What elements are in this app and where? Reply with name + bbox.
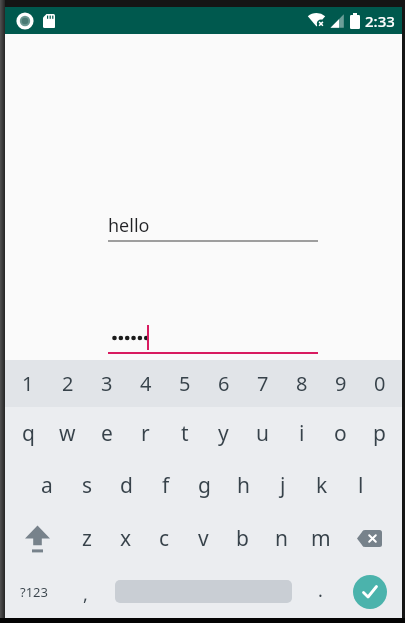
- staticText: 7: [257, 370, 269, 397]
- button[interactable]: g: [185, 459, 224, 512]
- staticText: l: [358, 471, 364, 500]
- button[interactable]: 5: [165, 360, 204, 407]
- button[interactable]: n: [262, 512, 301, 565]
- staticText: p: [373, 419, 386, 448]
- button[interactable]: 2: [48, 360, 87, 407]
- button[interactable]: [8, 512, 67, 565]
- staticText: n: [275, 524, 288, 553]
- staticText: 0: [374, 370, 386, 397]
- staticText: z: [82, 524, 92, 553]
- button[interactable]: s: [67, 459, 107, 512]
- button[interactable]: r: [126, 407, 165, 459]
- button[interactable]: 4: [126, 360, 165, 407]
- button[interactable]: w: [48, 407, 87, 459]
- staticText: q: [22, 419, 35, 448]
- button[interactable]: t: [165, 407, 204, 459]
- staticText: 6: [218, 370, 230, 397]
- button[interactable]: ,: [66, 565, 105, 618]
- button[interactable]: [340, 565, 399, 618]
- button[interactable]: v: [184, 512, 223, 565]
- button[interactable]: m: [301, 512, 340, 565]
- staticText: e: [101, 419, 113, 448]
- staticText: i: [299, 419, 305, 448]
- button[interactable]: p: [360, 407, 399, 459]
- staticText: ,: [83, 582, 88, 607]
- button[interactable]: c: [145, 512, 184, 565]
- staticText: hello: [108, 213, 150, 238]
- staticText: u: [256, 419, 269, 448]
- button[interactable]: o: [321, 407, 360, 459]
- button[interactable]: 1: [8, 360, 48, 407]
- staticText: 2: [62, 370, 74, 397]
- staticText: 3: [101, 370, 113, 397]
- staticText: 8: [296, 370, 308, 397]
- button[interactable]: l: [341, 459, 380, 512]
- staticText: h: [237, 471, 250, 500]
- staticText: v: [198, 524, 209, 553]
- staticText: m: [311, 524, 331, 553]
- staticText: 2:33: [365, 11, 395, 31]
- button[interactable]: j: [263, 459, 302, 512]
- staticText: t: [181, 419, 189, 448]
- staticText: d: [120, 471, 133, 500]
- staticText: j: [280, 471, 286, 500]
- button[interactable]: 3: [87, 360, 126, 407]
- staticText: 9: [335, 370, 347, 397]
- button[interactable]: 9: [321, 360, 360, 407]
- staticText: .: [318, 578, 323, 603]
- button[interactable]: k: [302, 459, 341, 512]
- staticText: k: [316, 471, 328, 500]
- button[interactable]: y: [204, 407, 243, 459]
- button[interactable]: z: [67, 512, 106, 565]
- staticText: o: [334, 419, 347, 448]
- button[interactable]: e: [87, 407, 126, 459]
- button[interactable]: 7: [243, 360, 282, 407]
- button[interactable]: u: [243, 407, 282, 459]
- staticText: a: [41, 471, 53, 500]
- button[interactable]: i: [282, 407, 321, 459]
- button[interactable]: d: [107, 459, 146, 512]
- button[interactable]: x: [106, 512, 145, 565]
- staticText: y: [218, 419, 229, 448]
- staticText: s: [82, 471, 93, 500]
- staticText: g: [198, 471, 211, 500]
- button[interactable]: 8: [282, 360, 321, 407]
- button[interactable]: a: [27, 459, 67, 512]
- button[interactable]: ?123: [8, 565, 66, 618]
- staticText: x: [120, 524, 132, 553]
- button[interactable]: .: [301, 565, 340, 618]
- staticText: b: [236, 524, 249, 553]
- button[interactable]: q: [8, 407, 48, 459]
- button[interactable]: h: [224, 459, 263, 512]
- staticText: r: [141, 419, 150, 448]
- staticText: 1: [22, 370, 34, 397]
- button[interactable]: b: [223, 512, 262, 565]
- button[interactable]: 6: [204, 360, 243, 407]
- button[interactable]: [340, 512, 399, 565]
- staticText: 5: [179, 370, 191, 397]
- staticText: 4: [140, 370, 152, 397]
- button[interactable]: [105, 565, 301, 618]
- button[interactable]: 0: [360, 360, 399, 407]
- staticText: c: [159, 524, 170, 553]
- button[interactable]: f: [146, 459, 185, 512]
- button[interactable]: hello: [108, 213, 150, 238]
- staticText: w: [59, 419, 76, 448]
- staticText: ?123: [20, 583, 48, 601]
- staticText: f: [162, 471, 170, 500]
